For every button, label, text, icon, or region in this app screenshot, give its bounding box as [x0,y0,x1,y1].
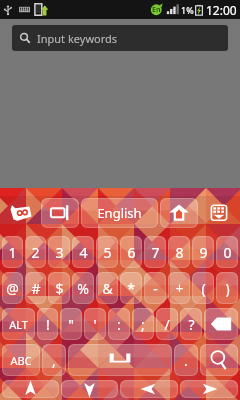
button[interactable]: GO Keyboard menu [2,198,39,228]
button[interactable]: * [120,272,142,304]
staticText: 9 [199,243,208,262]
button[interactable]: ) [216,272,238,304]
staticText: 2 [31,243,40,262]
button[interactable]: 6 [120,236,142,268]
staticText: 1 [8,243,17,262]
button[interactable]: $ [48,272,70,304]
button[interactable]: " [60,308,82,340]
button[interactable]: ? [180,308,202,340]
button[interactable]: Input keywords [12,25,228,51]
staticText: @ [6,279,19,298]
staticText: English [97,204,142,222]
staticText: * [127,279,135,298]
button[interactable]: English [81,198,158,228]
button[interactable]: 0 [216,236,238,268]
button[interactable]: 5 [96,236,118,268]
button[interactable]: ! [37,308,58,340]
button[interactable]: / [156,308,178,340]
staticText: ' [93,315,97,334]
button[interactable]: # [25,272,46,304]
button[interactable]: Left [120,380,178,398]
staticText: , [52,351,56,370]
staticText: 1% [181,4,194,16]
button[interactable]: Space [68,344,172,376]
staticText: 6 [127,243,136,262]
button[interactable]: Down [61,380,118,398]
staticText: 12:00 [206,2,237,18]
button[interactable]: Search [200,344,238,376]
button[interactable]: ; [132,308,154,340]
button[interactable]: 2 [25,236,46,268]
staticText: ) [225,279,230,298]
button[interactable]: ALT [2,308,35,340]
staticText: ALT [9,317,28,332]
button[interactable]: : [108,308,130,340]
staticText: 4 [79,243,88,262]
button[interactable]: @ [2,272,23,304]
button[interactable]: + [168,272,190,304]
button[interactable]: , [42,344,66,376]
staticText: & [102,279,113,298]
button[interactable]: ( [192,272,214,304]
staticText: : [117,315,121,334]
button[interactable]: 1 [2,236,23,268]
button[interactable]: 7 [144,236,166,268]
staticText: 3 [55,243,64,262]
staticText: ? [188,315,195,334]
button[interactable]: & [96,272,118,304]
button[interactable]: % [72,272,94,304]
button[interactable]: ABC [2,344,40,376]
staticText: " [68,315,74,334]
staticText: ( [201,279,206,298]
button[interactable]: ' [84,308,106,340]
staticText: # [31,279,41,298]
staticText: En [152,5,161,15]
staticText: ! [46,315,50,334]
button[interactable]: 3 [48,236,70,268]
staticText: 7 [151,243,160,262]
staticText: 0 [223,243,232,262]
staticText: 5 [103,243,112,262]
button[interactable]: Up [2,380,59,398]
staticText: ; [141,315,145,334]
staticText: Input keywords [37,31,118,46]
staticText: 8 [175,243,184,262]
staticText: + [175,279,184,298]
staticText: $ [55,279,64,298]
button[interactable]: 4 [72,236,94,268]
staticText: % [77,279,89,298]
staticText: - [153,279,158,298]
button[interactable]: . [174,344,198,376]
staticText: / [164,315,170,334]
button[interactable]: Settings [200,198,238,228]
staticText: ABC [10,353,32,368]
button[interactable]: 8 [168,236,190,268]
button[interactable]: Right [180,380,238,398]
button[interactable]: - [144,272,166,304]
staticText: . [184,351,188,370]
button[interactable]: 9 [192,236,214,268]
button[interactable]: Backspace [204,308,238,340]
button[interactable]: Theme [160,198,198,228]
button[interactable]: Voice input [41,198,79,228]
